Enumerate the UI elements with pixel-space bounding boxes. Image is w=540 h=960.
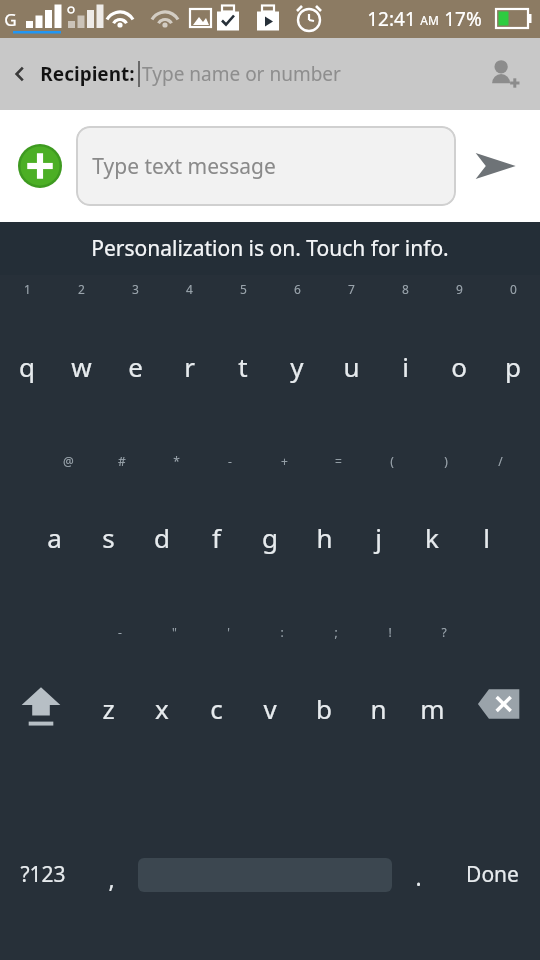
staticText: ( xyxy=(390,453,394,469)
button[interactable]: k xyxy=(405,447,459,618)
staticText: h xyxy=(316,520,333,555)
staticText: e xyxy=(128,349,143,384)
button[interactable]: Send xyxy=(464,135,526,197)
button[interactable]: g xyxy=(243,447,297,618)
staticText: w xyxy=(71,349,92,384)
staticText: Done xyxy=(466,860,519,889)
staticText: n xyxy=(370,691,387,726)
button[interactable]: t xyxy=(216,275,270,447)
staticText: 12:41 xyxy=(367,6,416,32)
button[interactable]: Done xyxy=(445,789,540,960)
staticText: / xyxy=(498,453,503,469)
button[interactable]: u xyxy=(324,275,378,447)
staticText: o xyxy=(451,349,467,384)
button[interactable]: c xyxy=(189,618,243,789)
button[interactable]: w xyxy=(54,275,108,447)
button[interactable]: x xyxy=(135,618,189,789)
staticText: f xyxy=(212,520,221,555)
staticText: p xyxy=(505,349,521,384)
staticText: x xyxy=(155,691,169,726)
button[interactable]: y xyxy=(270,275,324,447)
button[interactable]: b xyxy=(297,618,351,789)
button[interactable]: , xyxy=(85,789,138,960)
staticText: m xyxy=(420,691,445,726)
button[interactable]: v xyxy=(243,618,297,789)
staticText: ? xyxy=(441,624,447,640)
staticText: ' xyxy=(227,624,230,640)
button[interactable]: d xyxy=(135,447,189,618)
button[interactable]: a xyxy=(27,447,81,618)
staticText: : xyxy=(280,624,284,640)
button[interactable]: Personalization is on. Touch for info. xyxy=(0,222,540,275)
staticText: AM xyxy=(420,12,439,28)
button[interactable]: o xyxy=(432,275,486,447)
staticText: 0 xyxy=(510,281,517,297)
staticText: ; xyxy=(334,624,338,640)
staticText: i xyxy=(402,349,409,384)
staticText: Type name or number xyxy=(142,61,341,87)
button[interactable]: f xyxy=(189,447,243,618)
staticText: u xyxy=(343,349,360,384)
button[interactable]: n xyxy=(351,618,405,789)
button[interactable]: h xyxy=(297,447,351,618)
staticText: 17% xyxy=(444,6,482,32)
button[interactable]: Type text message xyxy=(76,126,456,206)
staticText: 6 xyxy=(294,281,301,297)
button[interactable]: r xyxy=(162,275,216,447)
staticText: ! xyxy=(388,624,392,640)
staticText: - xyxy=(118,624,122,640)
staticText: Personalization is on. Touch for info. xyxy=(91,234,449,263)
staticText: j xyxy=(375,520,382,555)
staticText: ) xyxy=(444,453,448,469)
staticText: + xyxy=(281,453,288,469)
staticText: Type text message xyxy=(92,152,276,181)
button[interactable]: Add attachment xyxy=(14,140,66,192)
staticText: t xyxy=(238,349,248,384)
staticText: # xyxy=(118,453,126,469)
staticText: r xyxy=(184,349,195,384)
button[interactable]: s xyxy=(81,447,135,618)
staticText: l xyxy=(483,520,490,555)
staticText: G xyxy=(4,8,17,31)
staticText: " xyxy=(172,624,177,640)
staticText: 5 xyxy=(240,281,247,297)
button[interactable]: e xyxy=(108,275,162,447)
staticText: * xyxy=(173,453,180,469)
button[interactable]: ?123 xyxy=(0,789,85,960)
staticText: s xyxy=(102,520,115,555)
button[interactable]: Shift xyxy=(0,618,81,789)
staticText: y xyxy=(290,349,304,384)
staticText: b xyxy=(316,691,332,726)
staticText: 1 xyxy=(24,281,31,297)
staticText: c xyxy=(210,691,223,726)
button[interactable]: l xyxy=(459,447,513,618)
button[interactable]: m xyxy=(405,618,459,789)
staticText: 3 xyxy=(132,281,139,297)
staticText: - xyxy=(228,453,232,469)
button[interactable]: q xyxy=(0,275,54,447)
staticText: ?123 xyxy=(20,860,66,889)
staticText: Recipient: xyxy=(40,61,135,87)
staticText: = xyxy=(335,453,342,469)
button[interactable]: i xyxy=(378,275,432,447)
staticText: , xyxy=(108,863,115,894)
staticText: @ xyxy=(63,453,74,469)
staticText: q xyxy=(19,349,35,384)
other: Space xyxy=(138,803,392,946)
button[interactable]: Add contact xyxy=(468,38,540,110)
button[interactable]: j xyxy=(351,447,405,618)
staticText: v xyxy=(263,691,277,726)
button[interactable]: z xyxy=(81,618,135,789)
button[interactable]: Type name or number xyxy=(142,38,468,110)
button[interactable]: Backspace xyxy=(459,618,540,789)
staticText: k xyxy=(425,520,439,555)
staticText: . xyxy=(415,861,422,892)
button[interactable]: Back xyxy=(0,38,40,110)
staticText: d xyxy=(154,520,170,555)
staticText: 2 xyxy=(78,281,85,297)
button[interactable]: . xyxy=(392,789,445,960)
staticText: 7 xyxy=(348,281,355,297)
staticText: 4 xyxy=(186,281,193,297)
button[interactable]: p xyxy=(486,275,540,447)
